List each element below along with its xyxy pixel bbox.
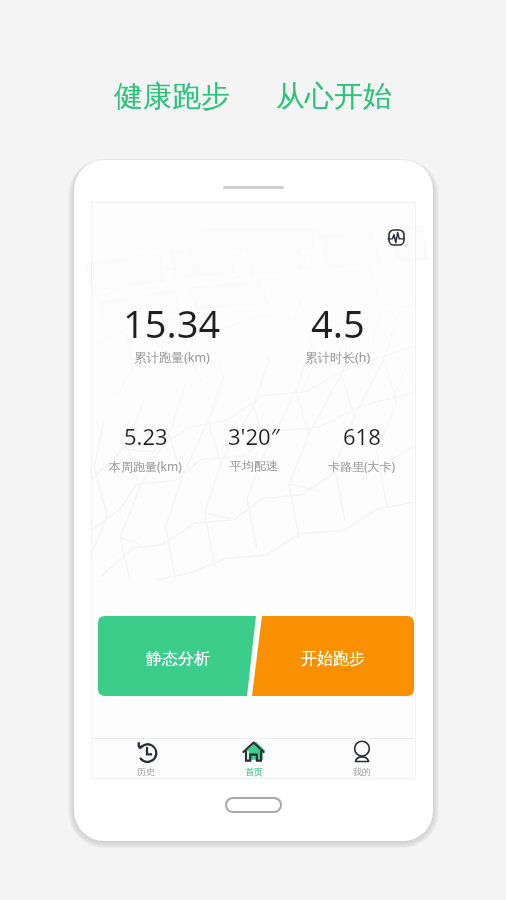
- button[interactable]: 开始跑步: [252, 616, 414, 696]
- staticText: 开始跑步: [301, 649, 365, 669]
- staticText: 历史: [137, 766, 155, 777]
- staticText: 健康跑步: [114, 78, 230, 115]
- staticText: 累计跑量(km): [134, 349, 210, 366]
- staticText: 卡路里(大卡): [328, 458, 396, 474]
- button[interactable]: 我的: [308, 739, 416, 779]
- staticText: 4.5: [311, 297, 365, 349]
- staticText: 累计时长(h): [305, 349, 371, 366]
- staticText: 3'20″: [228, 421, 280, 451]
- staticText: 首页: [245, 766, 263, 777]
- staticText: 5.23: [124, 421, 168, 451]
- staticText: 我的: [353, 766, 371, 777]
- staticText: 从心开始: [276, 78, 392, 115]
- staticText: 618: [343, 421, 381, 451]
- staticText: 平均配速: [230, 458, 278, 473]
- staticText: 静态分析: [146, 649, 210, 669]
- button[interactable]: 历史: [91, 739, 200, 779]
- button[interactable]: 静态分析: [98, 616, 256, 696]
- button[interactable]: Heart rate: [388, 229, 405, 246]
- button[interactable]: 首页: [200, 739, 308, 779]
- staticText: 本周跑量(km): [109, 458, 182, 474]
- staticText: 15.34: [123, 297, 221, 349]
